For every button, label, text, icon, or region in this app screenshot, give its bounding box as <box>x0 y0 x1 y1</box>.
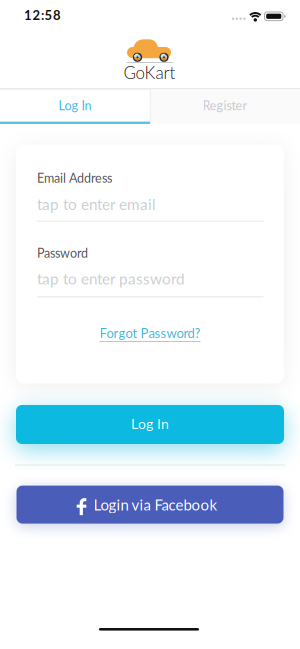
staticText: Log In <box>131 415 169 432</box>
staticText: Register <box>202 98 247 113</box>
staticText: tap to enter email <box>37 195 156 213</box>
button[interactable]: tap to enter password <box>16 269 284 288</box>
staticText: Password <box>37 245 88 260</box>
staticText: 12:58 <box>24 7 61 23</box>
staticText: Forgot Password? <box>99 325 200 341</box>
button[interactable]: Log In <box>0 89 150 122</box>
staticText: Login via Facebook <box>93 496 217 514</box>
button[interactable]: Register <box>150 89 300 122</box>
staticText: Log In <box>58 98 91 113</box>
staticText: tap to enter password <box>37 269 185 288</box>
staticText: GoKart <box>123 62 175 82</box>
staticText: Email Address <box>37 170 112 185</box>
button[interactable]: Log In <box>16 405 284 444</box>
button[interactable]: tap to enter email <box>16 195 284 213</box>
button[interactable]: Forgot Password? <box>99 325 200 341</box>
button[interactable]: Login via Facebook <box>16 486 283 524</box>
